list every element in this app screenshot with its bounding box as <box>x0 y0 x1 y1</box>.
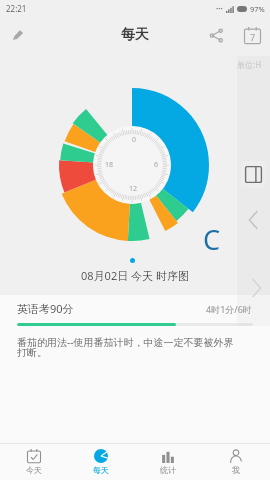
staticText: 统计 <box>160 465 176 475</box>
staticText: 6 <box>154 160 159 170</box>
staticText: ••• <box>216 5 223 13</box>
staticText: 单位:H <box>237 59 262 70</box>
staticText: 18 <box>105 160 114 170</box>
staticText: 0 <box>132 135 137 145</box>
staticText: 22:21 <box>6 3 27 14</box>
staticText: 英语考90分 <box>17 301 74 316</box>
staticText: 我 <box>232 465 240 475</box>
button[interactable]: Forward <box>245 277 267 299</box>
staticText: 每天 <box>121 26 149 44</box>
staticText: 番茄的用法--使用番茄计时，中途一定不要被外界打断。 <box>17 335 241 359</box>
button[interactable]: 英语考90分 <box>0 295 270 359</box>
staticText: 今天 <box>26 465 42 475</box>
staticText: 12 <box>129 184 138 194</box>
staticText: C <box>203 221 221 258</box>
button[interactable]: 今天 <box>0 444 67 480</box>
button[interactable]: Share <box>198 17 234 53</box>
button[interactable]: Split screen <box>241 161 266 188</box>
button[interactable]: 每天 <box>67 444 134 480</box>
staticText: 每天 <box>93 465 109 475</box>
button[interactable]: Calendar <box>234 17 270 53</box>
staticText: 97% <box>250 4 265 14</box>
button[interactable]: 统计 <box>134 444 202 480</box>
button[interactable]: 我 <box>202 444 270 480</box>
staticText: 4时1分/6时 <box>206 303 252 315</box>
staticText: 08月02日 今天 时序图 <box>81 268 189 283</box>
staticText: 7 <box>250 31 256 43</box>
button[interactable]: Edit <box>0 17 36 53</box>
button[interactable]: Back <box>243 209 265 231</box>
